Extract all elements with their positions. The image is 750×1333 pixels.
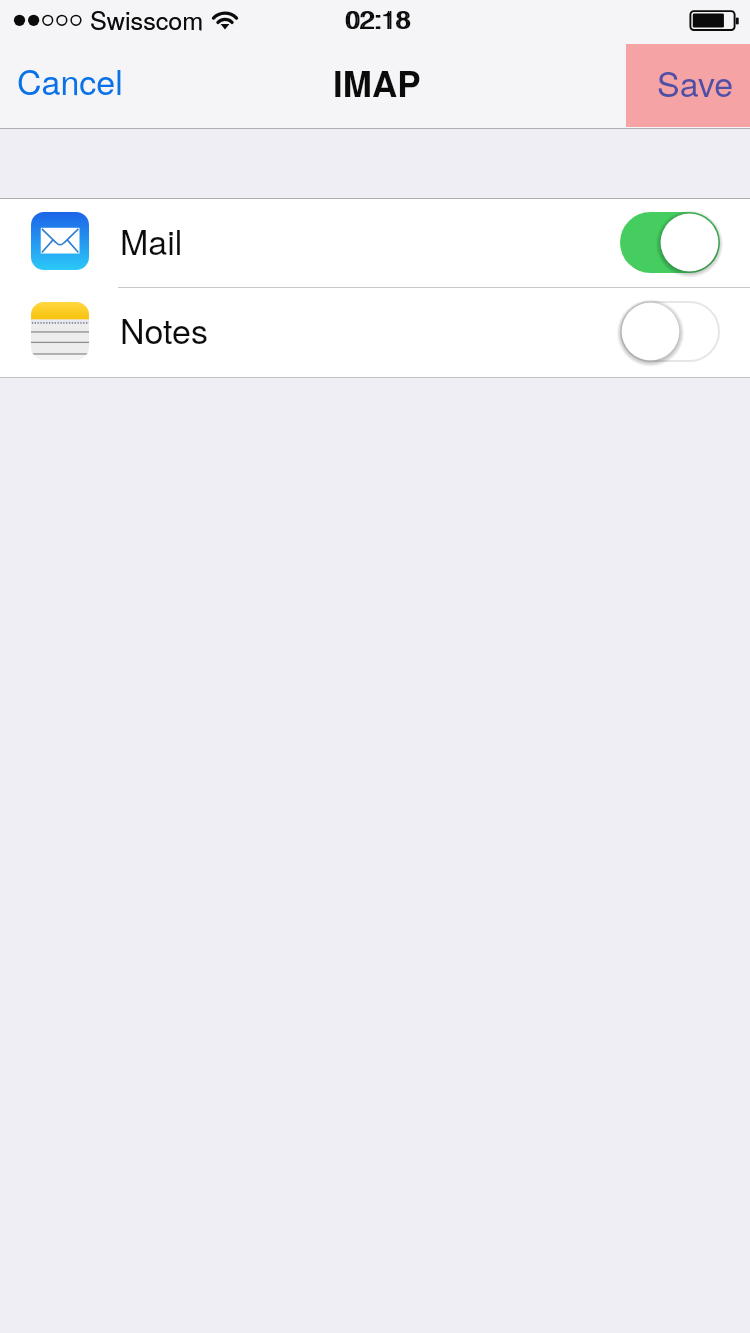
button[interactable]: Toggle on: [620, 212, 720, 273]
staticText: Swisscom: [90, 1, 204, 37]
staticText: Mail: [120, 216, 183, 265]
staticText: Swisscom: [90, 1, 204, 37]
staticText: 02:18: [2, 0, 750, 36]
button[interactable]: Save: [626, 44, 750, 127]
staticText: Notes: [120, 305, 208, 354]
button[interactable]: Toggle off: [620, 301, 720, 362]
button[interactable]: Cancel: [0, 44, 140, 124]
button[interactable]: Mail: [0, 199, 750, 288]
staticText: IMAP: [333, 58, 421, 108]
staticText: 02:18: [4, 0, 750, 36]
staticText: Cancel: [17, 56, 123, 105]
staticText: Save: [657, 58, 734, 107]
button[interactable]: Notes: [0, 288, 750, 377]
